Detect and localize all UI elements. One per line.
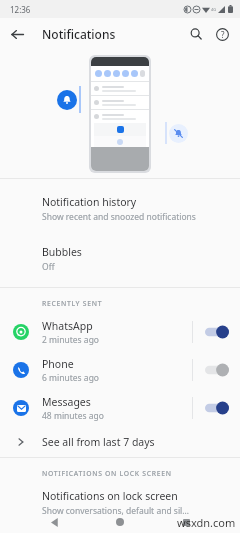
- staticText: Show recent and snoozed notifications: [42, 211, 196, 223]
- button[interactable]: Notification history: [0, 189, 240, 229]
- staticText: wsxdn.com: [177, 515, 236, 530]
- staticText: 48 minutes ago: [42, 410, 104, 422]
- button[interactable]: Home: [109, 511, 131, 533]
- staticText: Messages: [42, 395, 91, 409]
- staticText: 2 minutes ago: [42, 334, 100, 346]
- button[interactable]: Messages: [0, 389, 240, 427]
- button[interactable]: Back: [44, 511, 66, 533]
- staticText: NOTIFICATIONS ON LOCK SCREEN: [42, 469, 172, 478]
- button[interactable]: See all from last 7 days: [0, 427, 240, 457]
- staticText: WhatsApp: [42, 319, 93, 333]
- button[interactable]: Help: [210, 22, 234, 46]
- staticText: See all from last 7 days: [42, 435, 155, 449]
- button[interactable]: WhatsApp: [0, 313, 240, 351]
- button[interactable]: Turn on Phone: [193, 351, 240, 389]
- staticText: ?: [221, 29, 225, 40]
- staticText: 4G: [211, 7, 217, 12]
- button[interactable]: Phone: [0, 351, 240, 389]
- button[interactable]: Turn off Messages: [193, 389, 240, 427]
- staticText: Notifications on lock screen: [42, 489, 178, 503]
- staticText: Bubbles: [42, 245, 82, 259]
- staticText: Notifications: [42, 26, 116, 42]
- button[interactable]: Notifications on lock screen: [0, 483, 240, 523]
- staticText: Show conversations, default and sil…: [42, 505, 190, 517]
- button[interactable]: Search: [184, 22, 208, 46]
- button[interactable]: Recent apps: [175, 511, 197, 533]
- staticText: RECENTLY SENT: [42, 299, 103, 308]
- staticText: Phone: [42, 357, 74, 371]
- staticText: Off: [42, 261, 55, 273]
- button[interactable]: Back: [6, 23, 28, 45]
- staticText: 12:36: [10, 4, 31, 15]
- button[interactable]: Bubbles: [0, 239, 240, 279]
- staticText: Notification history: [42, 195, 137, 209]
- staticText: 6 minutes ago: [42, 372, 100, 384]
- button[interactable]: Turn off WhatsApp: [193, 313, 240, 351]
